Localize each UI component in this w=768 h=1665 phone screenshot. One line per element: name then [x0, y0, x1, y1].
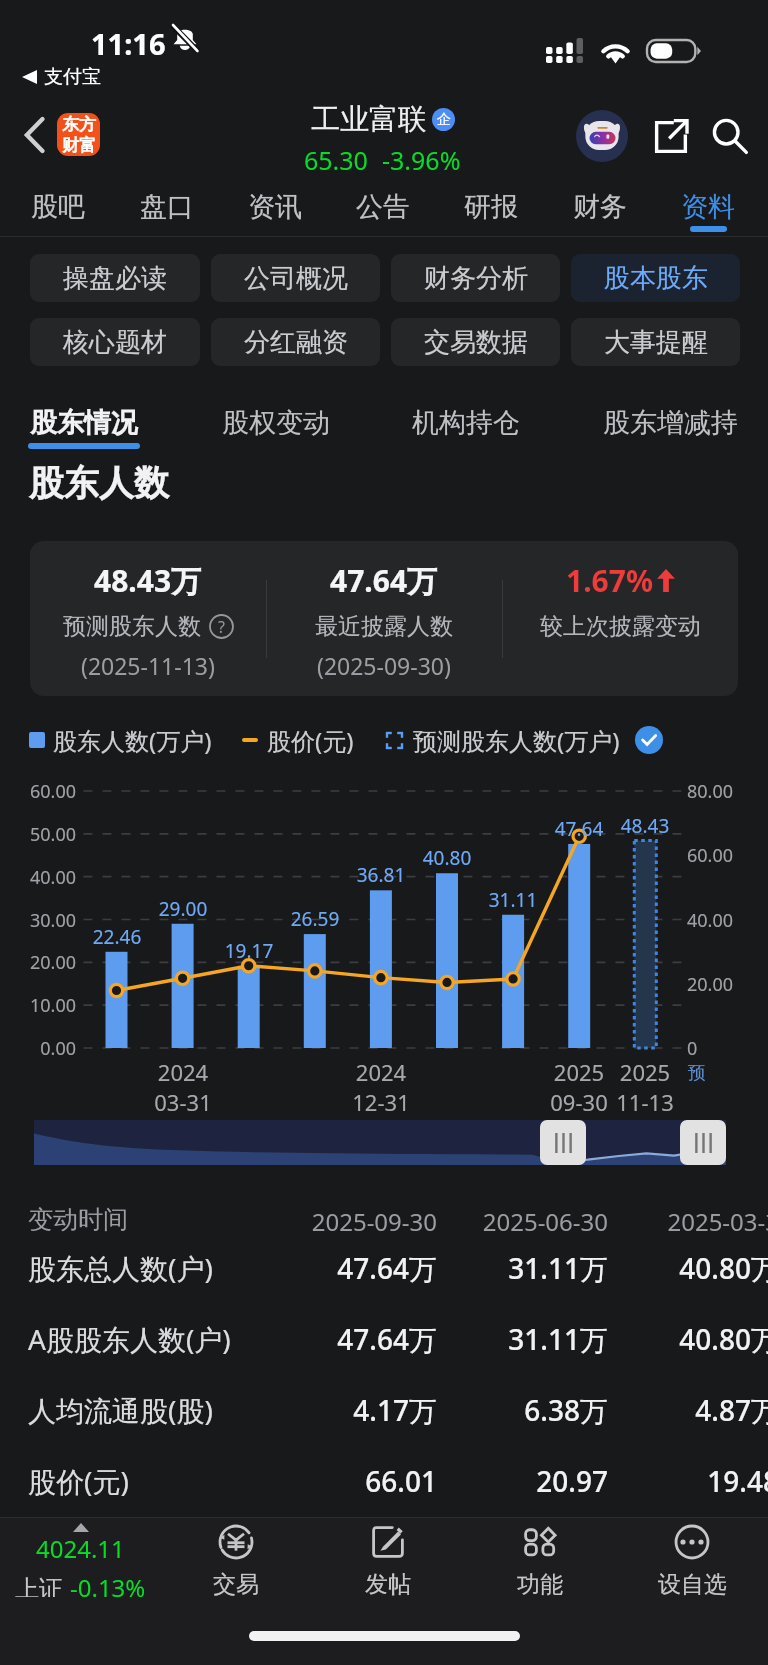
staticText: 1.67%	[566, 560, 653, 601]
staticText: 财务	[573, 190, 627, 224]
staticText: 40.00	[687, 908, 734, 933]
button[interactable]: 功能	[480, 1524, 600, 1596]
staticText: 交易数据	[424, 326, 528, 359]
button[interactable]: Range right handle	[680, 1120, 726, 1165]
button[interactable]: 公司概况	[211, 254, 380, 302]
button[interactable]: 股价(元)	[0, 1449, 768, 1515]
button[interactable]: 分红融资	[211, 318, 380, 366]
button[interactable]: 股东增减持	[590, 392, 750, 454]
button[interactable]: 股东总人数(户)	[0, 1236, 768, 1302]
button[interactable]: 股权变动	[211, 392, 341, 454]
staticText: 操盘必读	[63, 262, 167, 295]
staticText: 上证	[15, 1571, 70, 1597]
button[interactable]: 大事提醒	[571, 318, 740, 366]
staticText: 20.00	[687, 972, 734, 997]
staticText: 10.00	[10, 993, 76, 1018]
staticText: 40.80万	[608, 1320, 768, 1358]
staticText: A股股东人数(户)	[28, 1320, 231, 1358]
staticText: 20.00	[10, 950, 76, 975]
staticText: 交易	[213, 1570, 259, 1596]
staticText: 研报	[464, 190, 518, 224]
staticText: 2025 11-13	[595, 1057, 695, 1117]
staticText: 核心题材	[63, 326, 167, 359]
staticText: 股价(元)	[28, 1462, 129, 1500]
button[interactable]: 财务	[546, 178, 654, 236]
button[interactable]: Toggle forecast	[635, 726, 663, 754]
staticText: 股东增减持	[603, 406, 738, 440]
staticText: 40.80	[407, 845, 487, 871]
staticText: 19.48	[608, 1462, 768, 1500]
staticText: 36.81	[341, 862, 421, 888]
staticText: 企	[437, 111, 451, 129]
staticText: 资料	[681, 190, 735, 224]
button[interactable]: 机构持仓	[401, 392, 531, 454]
staticText: 最近披露人数	[315, 612, 453, 641]
staticText: 机构持仓	[412, 406, 520, 440]
staticText: 支付宝	[44, 65, 101, 89]
staticText: 盘口	[140, 190, 194, 224]
button[interactable]: 盘口	[113, 178, 221, 236]
staticText: 股权变动	[222, 406, 330, 440]
button[interactable]: 股东情况	[19, 392, 149, 454]
button[interactable]: A股股东人数(户)	[0, 1307, 768, 1373]
staticText: 股东人数	[29, 461, 169, 505]
staticText: 股东人数(万户)	[53, 724, 212, 757]
button[interactable]: 股吧	[4, 178, 112, 236]
staticText: 29.00	[143, 896, 223, 922]
button[interactable]: Share	[644, 110, 696, 162]
button[interactable]: 设自选	[632, 1524, 752, 1596]
staticText: (2025-11-13)	[81, 650, 215, 681]
staticText: 47.64万	[266, 1320, 437, 1358]
staticText: 40.00	[10, 865, 76, 890]
staticText: 20.97	[437, 1462, 608, 1500]
button[interactable]: Range left handle	[540, 1120, 586, 1165]
button[interactable]: Search	[704, 110, 756, 162]
staticText: 股价(元)	[267, 724, 354, 757]
staticText: 48.43	[605, 813, 685, 839]
button[interactable]: 4024.11	[0, 1519, 161, 1597]
button[interactable]: 47.64万	[266, 560, 502, 681]
button[interactable]: 股本股东	[571, 254, 740, 302]
staticText: 66.01	[266, 1462, 437, 1500]
staticText: 股东总人数(户)	[28, 1249, 213, 1287]
staticText: 50.00	[10, 822, 76, 847]
staticText: 30.00	[10, 908, 76, 933]
staticText: 分红融资	[244, 326, 348, 359]
staticText: 资讯	[248, 190, 302, 224]
staticText: 0	[687, 1036, 698, 1061]
button[interactable]: 1.67%	[502, 560, 738, 650]
staticText: 财富	[62, 135, 96, 156]
button[interactable]: AI assistant	[574, 108, 630, 164]
staticText: 65.30	[304, 143, 368, 177]
staticText: 预测股东人数(万户)	[413, 724, 620, 757]
staticText: 31.11万	[437, 1320, 608, 1358]
staticText: 0.00	[10, 1036, 76, 1061]
button[interactable]: East Money logo	[57, 113, 100, 156]
button[interactable]: 操盘必读	[30, 254, 200, 302]
button[interactable]: 公告	[329, 178, 437, 236]
button[interactable]: 资讯	[221, 178, 329, 236]
staticText: 6.38万	[437, 1391, 608, 1429]
staticText: 4024.11	[36, 1532, 125, 1565]
button[interactable]: 资料	[654, 178, 762, 236]
button[interactable]: 核心题材	[30, 318, 200, 366]
button[interactable]: 研报	[437, 178, 545, 236]
button[interactable]: 交易	[176, 1524, 296, 1596]
staticText: 功能	[517, 1570, 563, 1596]
button[interactable]: 人均流通股(股)	[0, 1378, 768, 1444]
staticText: 发帖	[365, 1570, 411, 1596]
staticText: 2025 09-30	[529, 1057, 629, 1117]
button[interactable]: 财务分析	[391, 254, 560, 302]
button[interactable]: 发帖	[328, 1524, 448, 1596]
button[interactable]: 交易数据	[391, 318, 560, 366]
staticText: 财务分析	[424, 262, 528, 295]
button[interactable]: Back	[2, 95, 56, 176]
staticText: 2024 12-31	[331, 1057, 431, 1117]
staticText: 2025-09-30	[266, 1205, 437, 1238]
staticText: 大事提醒	[604, 326, 708, 359]
staticText: 19.17	[209, 938, 289, 964]
button[interactable]: 48.43万	[30, 560, 266, 681]
staticText: 预	[688, 1062, 706, 1085]
staticText: 60.00	[10, 779, 76, 804]
staticText: 预测股东人数	[63, 612, 201, 641]
